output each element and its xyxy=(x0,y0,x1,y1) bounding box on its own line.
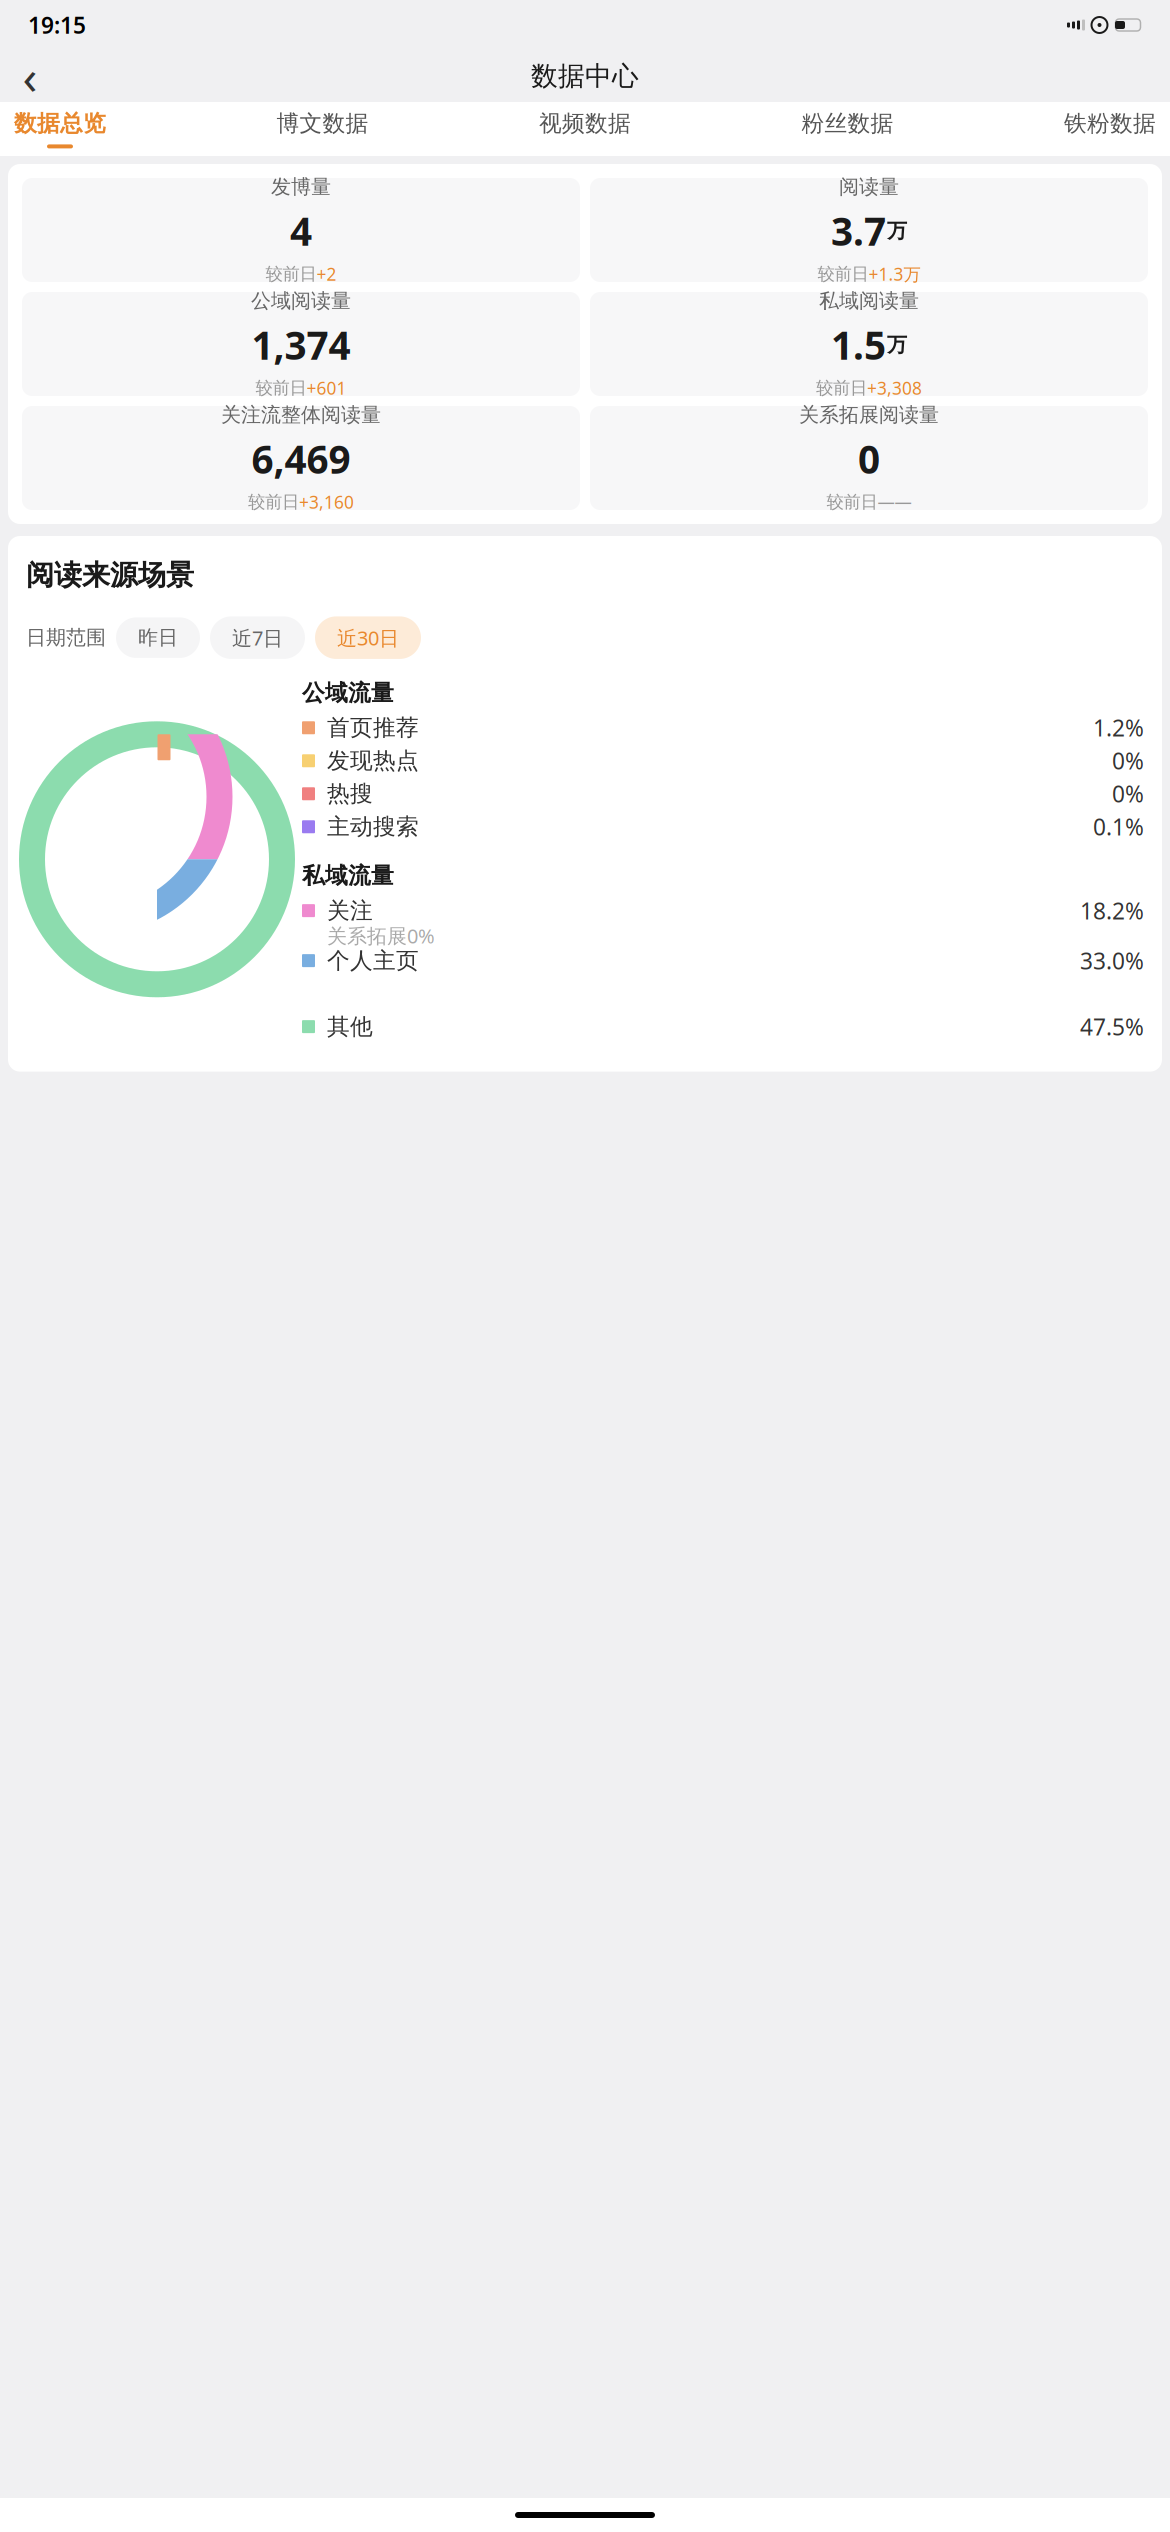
button[interactable]: 昨日 xyxy=(116,617,200,658)
staticText: 较前日 xyxy=(255,377,306,399)
staticText: +601 xyxy=(306,376,346,399)
button[interactable]: 发博量 xyxy=(22,178,580,282)
staticText: 铁粉数据 xyxy=(1064,110,1156,137)
staticText: 万 xyxy=(887,218,907,243)
staticText: 0% xyxy=(1112,779,1144,809)
staticText: 个人主页 xyxy=(327,947,419,974)
staticText: 0.1% xyxy=(1093,812,1144,842)
staticText: +3,308 xyxy=(867,376,922,399)
staticText: 关注流整体阅读量 xyxy=(221,402,381,427)
staticText: 阅读量 xyxy=(839,174,899,199)
staticText: —— xyxy=(877,490,911,513)
button[interactable]: 粉丝数据 xyxy=(801,104,893,154)
button[interactable]: 博文数据 xyxy=(276,104,368,154)
staticText: 首页推荐 xyxy=(327,714,419,742)
button[interactable]: 私域阅读量 xyxy=(590,292,1148,396)
staticText: 0% xyxy=(1112,746,1144,776)
staticText: 发现热点 xyxy=(327,747,419,775)
button[interactable]: 视频数据 xyxy=(539,104,631,154)
staticText: 热搜 xyxy=(327,780,373,808)
staticText: 其他 xyxy=(327,1013,373,1040)
staticText: 较前日 xyxy=(816,377,867,399)
button[interactable]: 近30日 xyxy=(315,616,421,659)
staticText: 昨日 xyxy=(138,625,178,650)
button[interactable]: 公域阅读量 xyxy=(22,292,580,396)
staticText: 数据总览 xyxy=(14,110,106,137)
staticText: 关注 xyxy=(327,897,373,924)
staticText: 较前日 xyxy=(248,491,299,513)
staticText: 3.7 xyxy=(831,205,886,256)
staticText: 万 xyxy=(887,332,907,357)
staticText: 1,374 xyxy=(251,319,350,370)
staticText: 私域流量 xyxy=(302,862,394,890)
staticText: 1.2% xyxy=(1093,713,1144,743)
button[interactable]: 关注流整体阅读量 xyxy=(22,406,580,510)
staticText: 6,469 xyxy=(251,433,350,484)
staticText: +3,160 xyxy=(299,490,354,513)
staticText: 4 xyxy=(290,205,312,256)
button[interactable]: Back xyxy=(8,54,52,98)
staticText: 较前日 xyxy=(817,263,868,285)
staticText: 发博量 xyxy=(271,174,331,199)
staticText: 0 xyxy=(858,433,880,484)
staticText: 较前日 xyxy=(265,263,316,285)
staticText: 近30日 xyxy=(337,624,399,651)
staticText: +1.3万 xyxy=(868,262,920,285)
staticText: 公域流量 xyxy=(302,679,394,707)
button[interactable]: 数据总览 xyxy=(14,104,106,154)
staticText: 18.2% xyxy=(1080,896,1144,926)
button[interactable]: 关系拓展阅读量 xyxy=(590,406,1148,510)
staticText: 47.5% xyxy=(1080,1012,1144,1042)
staticText: 33.0% xyxy=(1080,946,1144,976)
staticText: 近7日 xyxy=(232,624,283,651)
staticText: ‹ xyxy=(22,44,37,108)
staticText: 粉丝数据 xyxy=(801,110,893,137)
staticText: 1.5 xyxy=(831,319,886,370)
staticText: +2 xyxy=(316,262,336,285)
staticText: 19:15 xyxy=(28,10,86,40)
button[interactable]: 阅读量 xyxy=(590,178,1148,282)
staticText: 公域阅读量 xyxy=(251,288,351,313)
staticText: 阅读来源场景 xyxy=(26,558,194,592)
staticText: 博文数据 xyxy=(276,110,368,137)
staticText: 私域阅读量 xyxy=(819,288,919,313)
staticText: 关系拓展阅读量 xyxy=(799,402,939,427)
staticText: 较前日 xyxy=(826,491,877,513)
button[interactable]: 铁粉数据 xyxy=(1064,104,1156,154)
button[interactable]: 近7日 xyxy=(210,616,305,659)
staticText: 数据中心 xyxy=(531,60,639,92)
staticText: 主动搜索 xyxy=(327,813,419,841)
staticText: 日期范围 xyxy=(26,625,106,650)
staticText: 视频数据 xyxy=(539,110,631,137)
staticText: 关系拓展0% xyxy=(327,922,435,949)
